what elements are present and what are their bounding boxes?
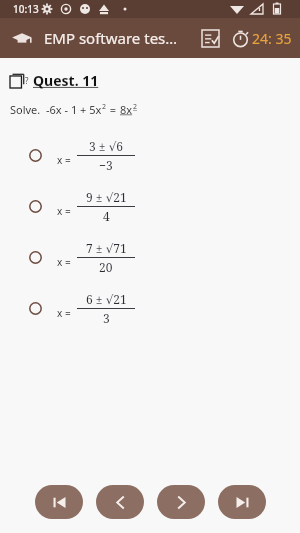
button[interactable]: x =: [0, 283, 300, 334]
button[interactable]: Previous question: [96, 485, 144, 519]
staticText: ?: [25, 75, 29, 86]
staticText: 2: [102, 102, 107, 112]
staticText: 6 ± √21: [86, 291, 127, 307]
button[interactable]: x =: [0, 181, 300, 232]
staticText: EMP software tes…: [44, 28, 178, 48]
staticText: 8x: [120, 102, 133, 117]
staticText: =: [107, 102, 120, 117]
staticText: −3: [99, 157, 113, 173]
staticText: x =: [57, 306, 71, 320]
staticText: x =: [57, 153, 71, 167]
staticText: x =: [57, 204, 71, 218]
button[interactable]: x =: [0, 232, 300, 283]
button[interactable]: First question: [35, 485, 83, 519]
staticText: Solve. -6x - 1 + 5x: [10, 102, 102, 117]
staticText: 4: [103, 208, 110, 224]
button[interactable]: Next question: [157, 485, 205, 519]
button[interactable]: ?: [10, 71, 300, 90]
staticText: 9 ± √21: [86, 189, 127, 205]
button[interactable]: Results: [197, 25, 223, 51]
staticText: x =: [57, 255, 71, 269]
staticText: 3: [103, 310, 110, 326]
button[interactable]: Last question: [218, 485, 266, 519]
staticText: 3 ± √6: [89, 138, 124, 154]
staticText: 24: 35: [252, 29, 292, 48]
staticText: 20: [99, 259, 113, 275]
button[interactable]: Menu: [8, 24, 36, 52]
staticText: 10:13: [13, 2, 39, 16]
staticText: 7 ± √71: [86, 240, 127, 256]
staticText: 2: [133, 102, 138, 112]
button[interactable]: x =: [0, 130, 300, 181]
staticText: Quest. 11: [33, 71, 99, 90]
